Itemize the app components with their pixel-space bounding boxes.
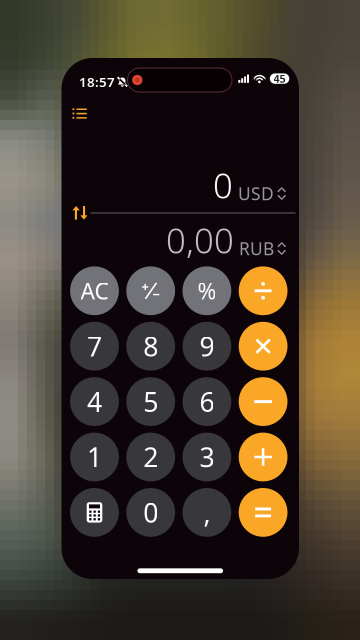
button[interactable]: Multiply: [239, 322, 287, 371]
button[interactable]: Rates list: [65, 101, 94, 126]
button[interactable]: Target currency RUB: [234, 234, 287, 263]
button[interactable]: AC: [70, 266, 119, 315]
staticText: 2: [143, 439, 158, 475]
button[interactable]: 9: [182, 322, 231, 371]
staticText: %: [197, 276, 216, 306]
staticText: RUB: [239, 237, 274, 260]
staticText: 0,00: [166, 217, 234, 263]
button[interactable]: 5: [126, 377, 175, 426]
staticText: 5: [143, 384, 158, 419]
staticText: 1: [87, 439, 102, 475]
staticText: 9: [199, 328, 214, 364]
button[interactable]: Decimal comma: [182, 488, 231, 537]
button[interactable]: 6: [182, 377, 231, 426]
button[interactable]: Plus: [239, 433, 287, 481]
staticText: 45: [274, 71, 286, 86]
staticText: 8: [143, 328, 158, 364]
staticText: 18:57: [79, 73, 115, 91]
staticText: 0: [213, 162, 233, 208]
button[interactable]: Equals: [239, 488, 287, 537]
button[interactable]: Plus minus: [126, 266, 175, 315]
button[interactable]: Swap currencies: [67, 201, 92, 225]
button[interactable]: 2: [126, 433, 175, 481]
staticText: ,: [203, 495, 210, 530]
button[interactable]: Divide: [239, 266, 287, 315]
staticText: USD: [238, 182, 274, 205]
button[interactable]: Minus: [239, 377, 287, 426]
staticText: 0: [143, 495, 158, 530]
button[interactable]: 0: [126, 488, 175, 537]
staticText: AC: [80, 276, 108, 306]
staticText: 6: [199, 384, 214, 419]
staticText: 3: [199, 439, 214, 475]
button[interactable]: 7: [70, 322, 119, 371]
button[interactable]: 8: [126, 322, 175, 371]
button[interactable]: 1: [70, 433, 119, 481]
button[interactable]: Calculator: [70, 488, 119, 537]
button[interactable]: Source currency USD: [233, 179, 287, 208]
button[interactable]: Percent: [182, 266, 231, 315]
button[interactable]: 4: [70, 377, 119, 426]
button[interactable]: 3: [182, 433, 231, 481]
staticText: 7: [87, 328, 102, 364]
staticText: 4: [87, 384, 102, 419]
